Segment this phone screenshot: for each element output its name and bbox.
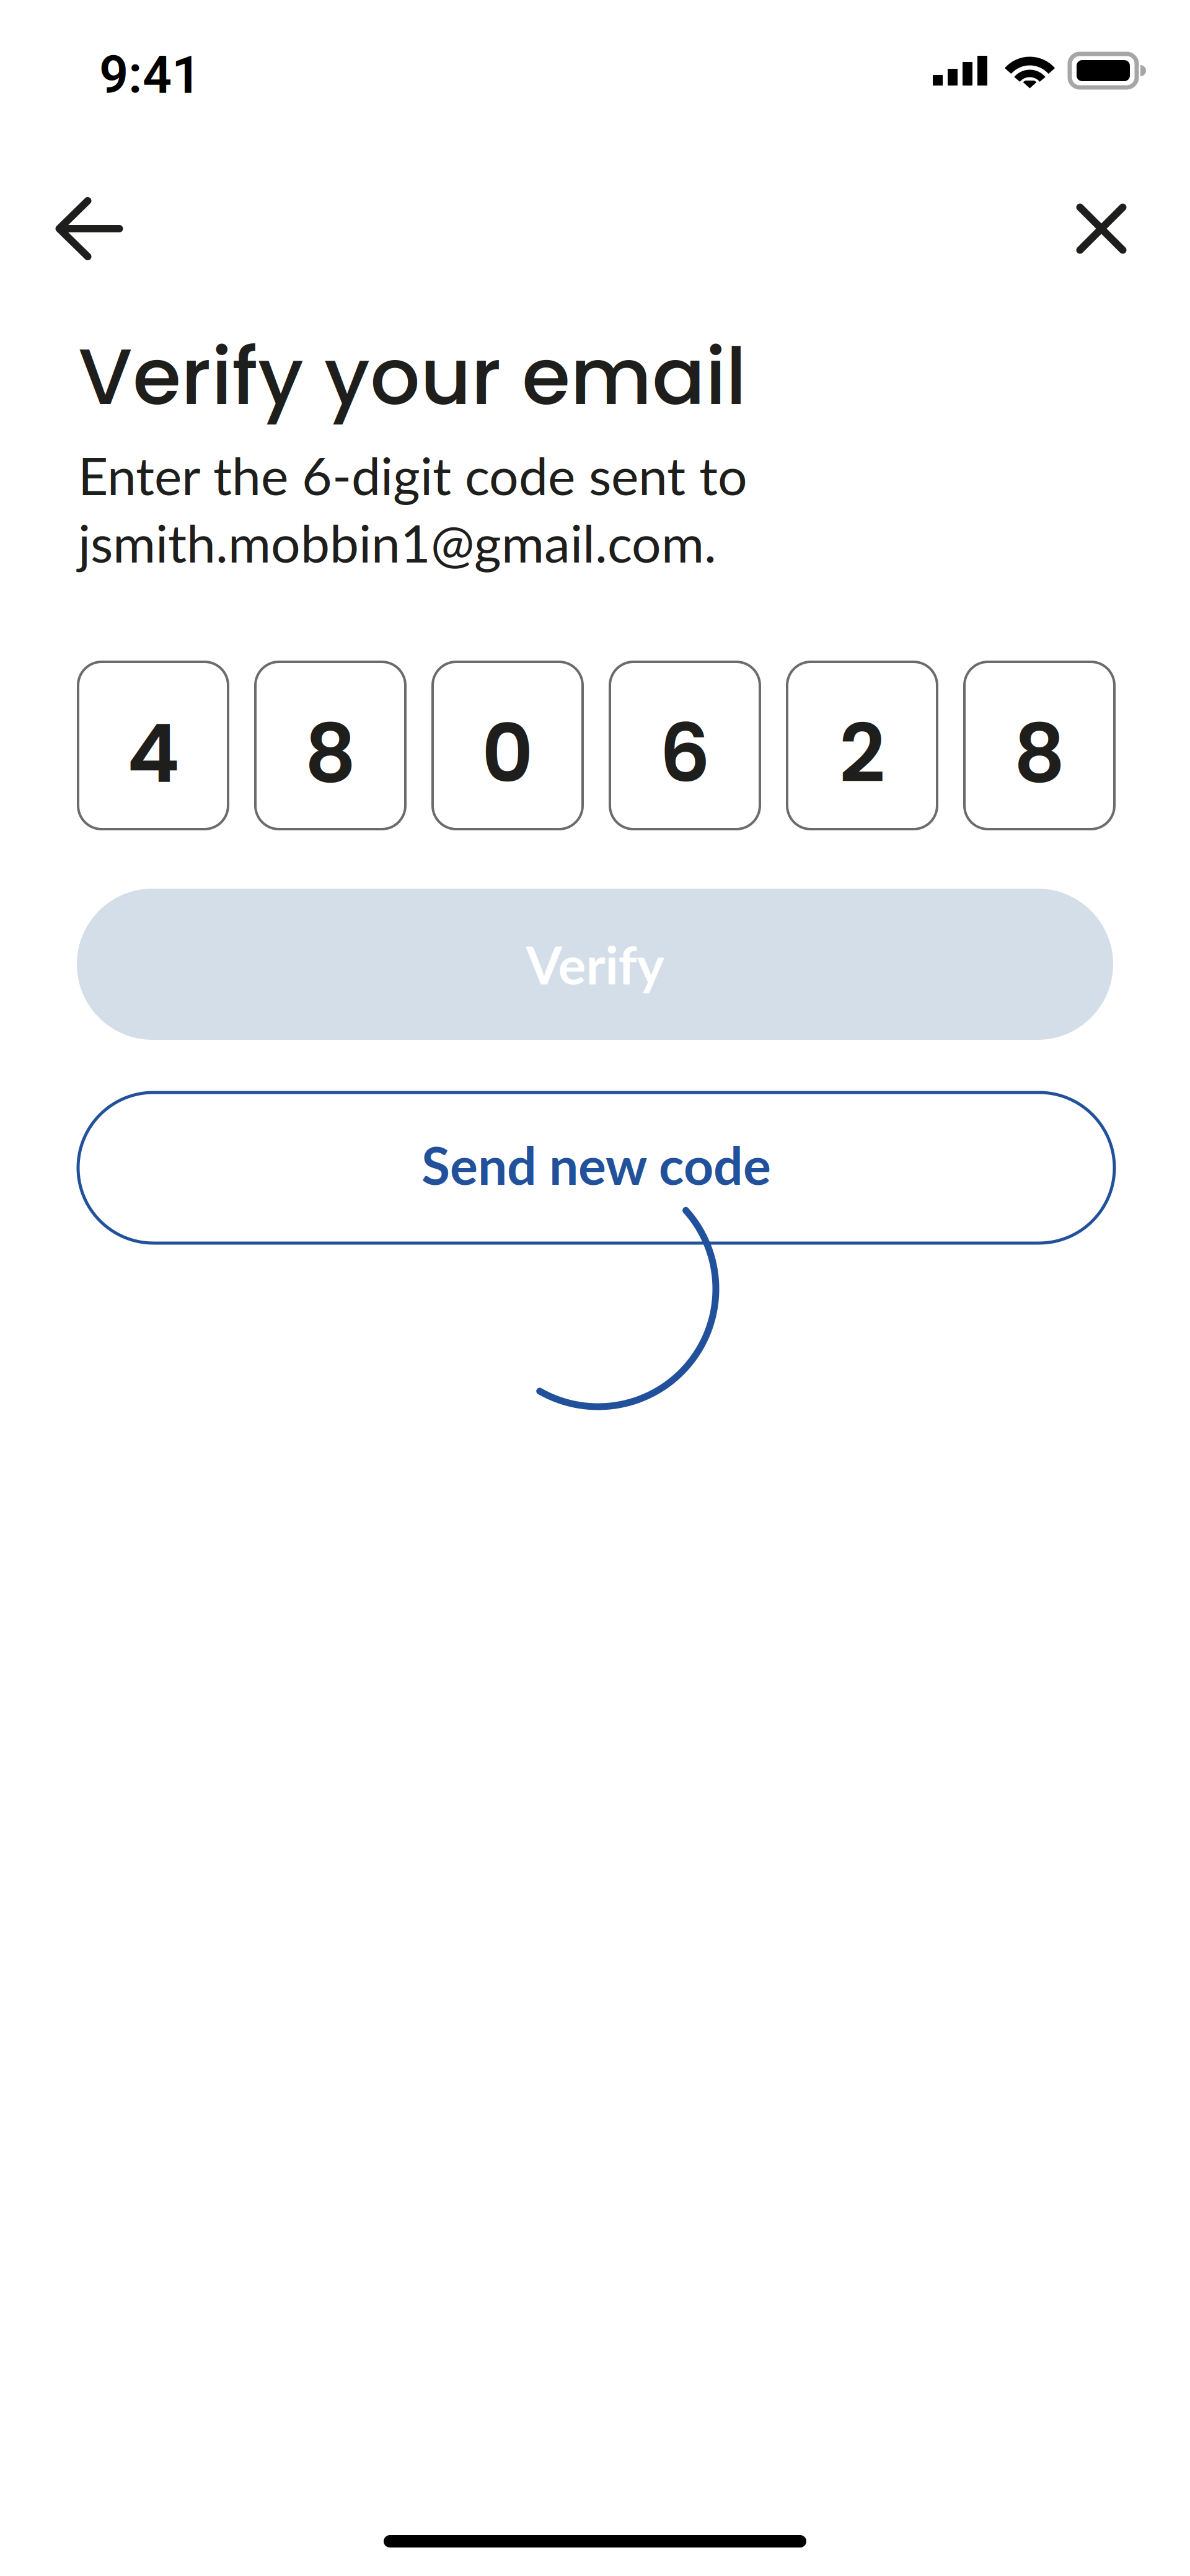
button[interactable]: Close [1052,179,1151,278]
staticText: 6 [659,697,711,810]
staticText: Verify your email [78,322,746,431]
staticText: 0 [482,697,534,810]
staticText: jsmith.mobbin1@gmail.com. [78,511,716,574]
button[interactable]: Send new code [78,1092,1114,1243]
staticText: 2 [839,697,885,810]
staticText: Enter the 6-digit code sent to [78,444,747,506]
staticText: 9:41 [99,45,201,105]
staticText: Verify [526,933,664,995]
button[interactable]: Verify [77,889,1113,1040]
staticText: 8 [1014,697,1065,810]
staticText: 8 [305,697,356,810]
staticText: Send new code [421,1133,771,1196]
button[interactable]: Back [40,179,139,278]
staticText: 4 [127,697,179,810]
